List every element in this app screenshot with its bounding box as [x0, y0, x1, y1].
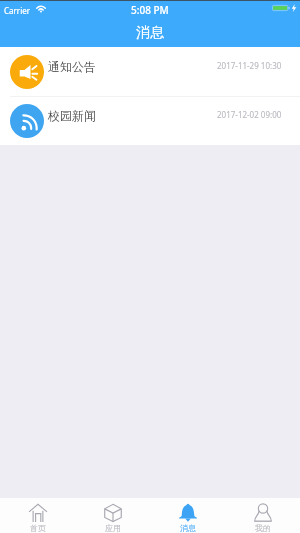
staticText: 2017-11-29 10:30: [217, 60, 282, 71]
button[interactable]: 我的: [225, 498, 300, 533]
staticText: 5:08 PM: [131, 3, 169, 17]
button[interactable]: 校园新闻: [0, 96, 300, 145]
staticText: 2017-12-02 09:00: [217, 109, 282, 120]
staticText: Carrier: [4, 5, 31, 16]
button[interactable]: 消息: [150, 498, 225, 533]
staticText: 消息: [180, 523, 196, 533]
staticText: 通知公告: [48, 59, 96, 74]
staticText: 我的: [255, 523, 271, 533]
button[interactable]: 应用: [75, 498, 150, 533]
staticText: 校园新闻: [48, 108, 96, 123]
button[interactable]: 通知公告: [0, 47, 300, 96]
staticText: 应用: [105, 523, 121, 533]
staticText: 消息: [136, 24, 164, 42]
staticText: 首页: [30, 523, 46, 533]
button[interactable]: 首页: [0, 498, 75, 533]
